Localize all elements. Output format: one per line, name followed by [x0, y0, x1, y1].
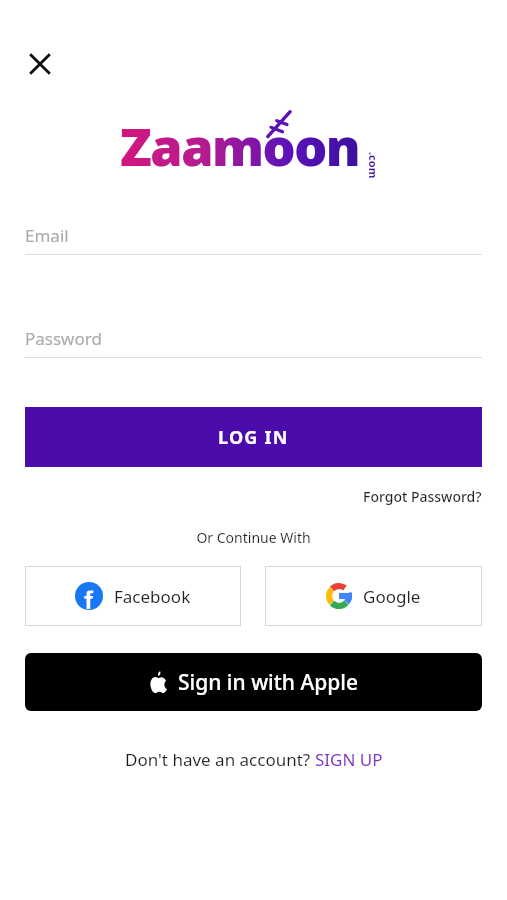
staticText: Google	[363, 585, 421, 608]
staticText: Zaamoon	[120, 110, 360, 181]
button[interactable]: Close	[20, 44, 60, 84]
staticText: Email	[25, 224, 69, 247]
button[interactable]: Google	[265, 566, 482, 626]
staticText: SIGN UP	[315, 748, 383, 771]
staticText: Facebook	[114, 585, 191, 608]
staticText: .com	[366, 152, 381, 179]
button[interactable]: Sign in with Apple	[25, 653, 482, 711]
button[interactable]: LOG IN	[25, 407, 482, 467]
staticText: LOG IN	[218, 425, 289, 450]
button[interactable]: Facebook	[25, 566, 241, 626]
staticText: Forgot Password?	[363, 487, 482, 506]
button[interactable]: Forgot Password?	[363, 487, 482, 506]
button[interactable]: SIGN UP	[315, 748, 383, 771]
button[interactable]: Email	[25, 224, 482, 255]
staticText: Don't have an account?	[125, 748, 315, 771]
staticText: Password	[25, 327, 102, 350]
staticText: Sign in with Apple	[178, 668, 358, 697]
staticText: Or Continue With	[25, 528, 482, 547]
button[interactable]: Password	[25, 327, 482, 358]
